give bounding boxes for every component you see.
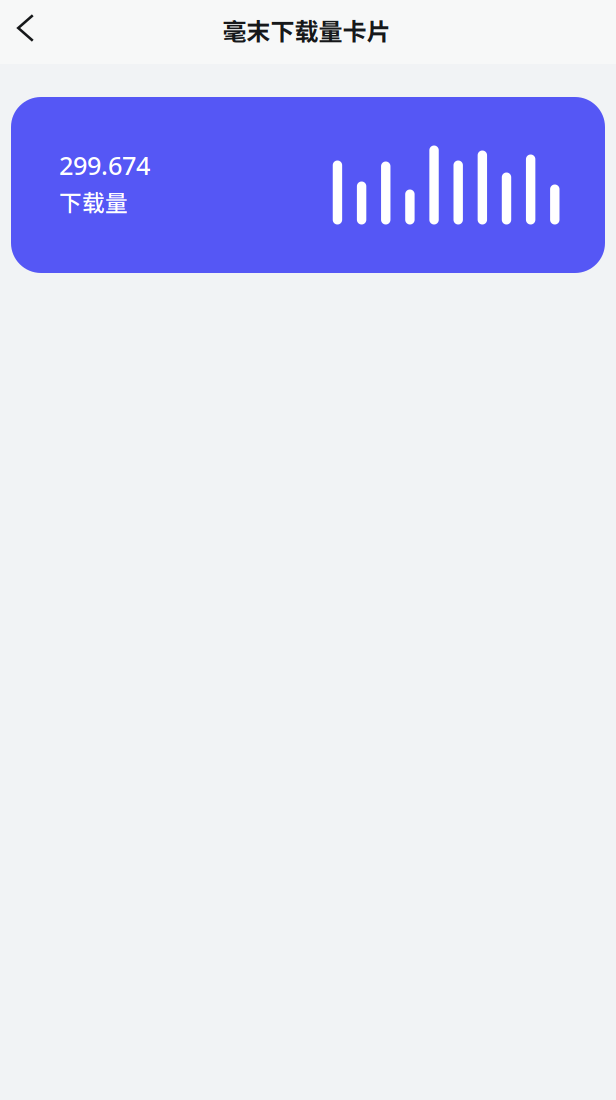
button[interactable]: Back (0, 0, 48, 64)
staticText: 299.674 (59, 148, 150, 182)
staticText: 毫末下载量卡片 (222, 13, 390, 47)
staticText: 下载量 (59, 185, 128, 218)
